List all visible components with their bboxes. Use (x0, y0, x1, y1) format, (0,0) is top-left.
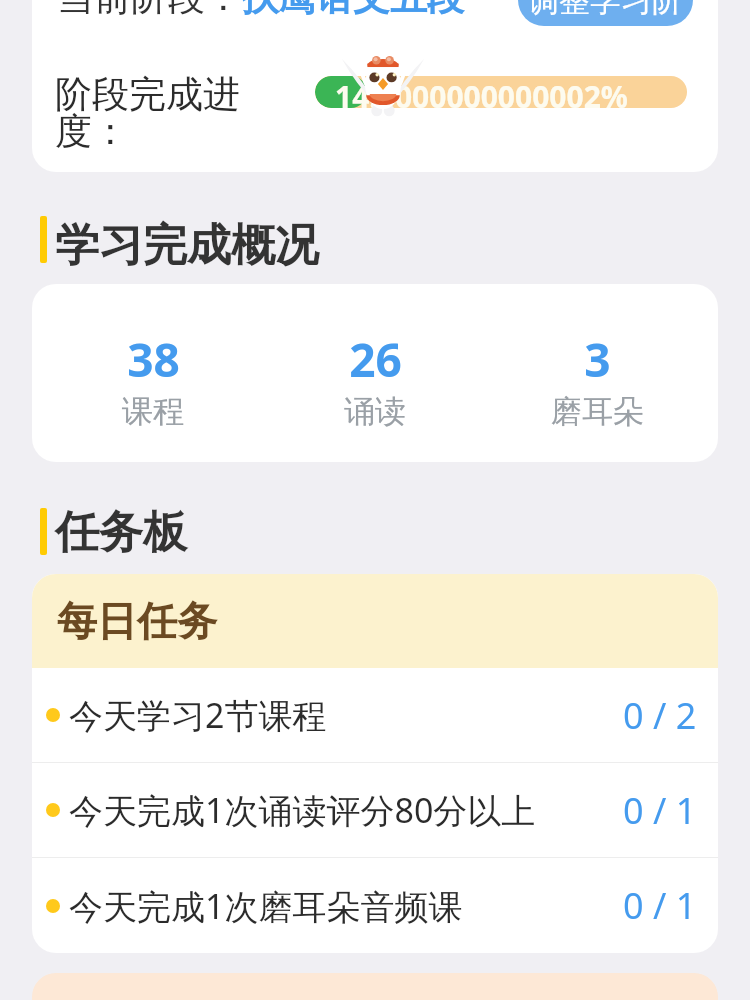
button[interactable]: 今天完成1次磨耳朵音频课 (32, 858, 718, 953)
other: Mascot (344, 51, 422, 117)
button[interactable]: 今天完成1次诵读评分80分以上 (32, 763, 718, 857)
staticText: 诵读 (344, 392, 406, 431)
staticText: 26 (349, 328, 402, 391)
button[interactable]: 今天学习2节课程 (32, 668, 718, 762)
staticText: 3 (584, 328, 611, 391)
button[interactable]: 38 (42, 284, 264, 462)
staticText: 今天完成1次磨耳朵音频课 (69, 883, 463, 929)
staticText: 阶段完成进 度： (55, 71, 240, 155)
staticText: 扶鹰语文五段 (242, 0, 464, 21)
staticText: 0 / 1 (623, 786, 697, 835)
staticText: 学习完成概况 (55, 218, 319, 273)
staticText: 当前阶段： (57, 0, 242, 21)
staticText: 课程 (122, 392, 184, 431)
staticText: 磨耳朵 (551, 392, 644, 431)
button[interactable]: 3 (486, 284, 708, 462)
staticText: 0 / 2 (623, 691, 697, 740)
button[interactable]: 26 (264, 284, 486, 462)
staticText: 调整学习阶 (528, 0, 683, 20)
staticText: 今天完成1次诵读评分80分以上 (69, 787, 536, 833)
staticText: 38 (127, 328, 180, 391)
staticText: 14.0000000000002% (335, 76, 628, 108)
button[interactable]: 调整学习阶 (518, 0, 693, 26)
staticText: 每日任务 (57, 596, 217, 646)
staticText: 今天学习2节课程 (69, 692, 327, 738)
staticText: 0 / 1 (623, 881, 697, 930)
staticText: 任务板 (55, 505, 187, 560)
